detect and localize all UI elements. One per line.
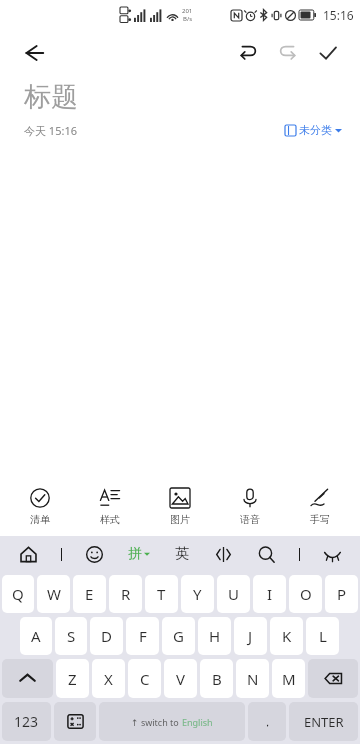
button[interactable]: M bbox=[272, 659, 305, 698]
staticText: W bbox=[47, 584, 61, 604]
button[interactable]: Q bbox=[2, 575, 34, 613]
button[interactable]: 清单 bbox=[10, 484, 70, 530]
button[interactable]: 123 bbox=[2, 702, 51, 741]
button[interactable]: J bbox=[234, 617, 267, 655]
button[interactable]: T bbox=[145, 575, 178, 613]
staticText: D bbox=[101, 626, 112, 646]
button[interactable]: Z bbox=[56, 659, 89, 698]
button[interactable]: K bbox=[270, 617, 303, 655]
button[interactable]: Hide keyboard bbox=[317, 539, 347, 569]
staticText: U bbox=[228, 584, 239, 604]
button[interactable]: W bbox=[37, 575, 70, 613]
staticText: O bbox=[300, 584, 312, 604]
button[interactable]: C bbox=[128, 659, 161, 698]
button[interactable]: 样式 bbox=[80, 484, 140, 530]
staticText: ↑ switch to bbox=[131, 716, 182, 728]
staticText: 拼 bbox=[128, 545, 142, 563]
staticText: C bbox=[140, 669, 150, 689]
button[interactable]: 英 bbox=[169, 545, 195, 563]
staticText: Q bbox=[12, 584, 24, 604]
button[interactable]: S bbox=[55, 617, 87, 655]
button[interactable]: 手写 bbox=[290, 484, 350, 530]
staticText: 15:16 bbox=[323, 7, 354, 23]
button[interactable]: Undo bbox=[228, 33, 268, 73]
button[interactable]: N bbox=[236, 659, 269, 698]
button[interactable]: Backspace bbox=[308, 659, 358, 698]
staticText: 语音 bbox=[240, 513, 260, 526]
staticText: 标题 bbox=[24, 80, 78, 114]
button[interactable]: E bbox=[73, 575, 106, 613]
staticText: 手写 bbox=[310, 513, 330, 526]
staticText: R bbox=[121, 584, 131, 604]
button[interactable]: 语音 bbox=[220, 484, 280, 530]
staticText: Z bbox=[68, 669, 77, 689]
button[interactable]: ENTER bbox=[289, 702, 358, 741]
button[interactable]: D bbox=[90, 617, 123, 655]
button[interactable]: Layout bbox=[208, 539, 238, 569]
button[interactable]: O bbox=[289, 575, 322, 613]
staticText: X bbox=[104, 669, 113, 689]
staticText: 清单 bbox=[30, 513, 50, 526]
button[interactable]: U bbox=[217, 575, 250, 613]
button[interactable]: G bbox=[162, 617, 195, 655]
staticText: I bbox=[267, 584, 273, 604]
staticText: 英 bbox=[175, 545, 189, 563]
staticText: P bbox=[337, 584, 347, 604]
button[interactable]: ， bbox=[248, 702, 286, 741]
staticText: G bbox=[173, 626, 184, 646]
button[interactable]: B bbox=[200, 659, 233, 698]
button[interactable]: I bbox=[253, 575, 286, 613]
button[interactable]: Back bbox=[12, 31, 56, 75]
button[interactable]: A bbox=[20, 617, 52, 655]
staticText: M bbox=[282, 669, 296, 689]
staticText: 123 bbox=[14, 712, 39, 731]
button[interactable]: X bbox=[92, 659, 125, 698]
button[interactable]: H bbox=[198, 617, 231, 655]
staticText: 未分类 bbox=[299, 123, 332, 137]
button[interactable]: Search bbox=[251, 539, 281, 569]
button[interactable]: Redo bbox=[268, 33, 308, 73]
staticText: 图片 bbox=[170, 513, 190, 526]
staticText: S bbox=[67, 626, 76, 646]
button[interactable]: Emoji bbox=[79, 539, 109, 569]
staticText: ， bbox=[262, 715, 273, 729]
staticText: 201 bbox=[182, 7, 193, 15]
button[interactable]: R bbox=[109, 575, 142, 613]
staticText: 今天 15:16 bbox=[24, 123, 77, 138]
staticText: J bbox=[248, 626, 253, 646]
staticText: English bbox=[182, 716, 213, 728]
button[interactable]: P bbox=[325, 575, 358, 613]
staticText: H bbox=[209, 626, 221, 646]
button[interactable]: Y bbox=[181, 575, 214, 613]
staticText: V bbox=[176, 669, 186, 689]
staticText: A bbox=[31, 626, 41, 646]
button[interactable]: Shift bbox=[2, 659, 53, 698]
button[interactable]: 图片 bbox=[150, 484, 210, 530]
staticText: L bbox=[319, 626, 327, 646]
staticText: T bbox=[157, 584, 166, 604]
staticText: B bbox=[212, 669, 222, 689]
staticText: K bbox=[282, 626, 292, 646]
staticText: Y bbox=[193, 584, 202, 604]
button[interactable]: L bbox=[306, 617, 339, 655]
button[interactable]: Home bbox=[13, 539, 43, 569]
button[interactable]: ↑ switch to bbox=[99, 702, 245, 741]
staticText: ENTER bbox=[304, 713, 344, 731]
staticText: B/s bbox=[183, 15, 193, 23]
staticText: N bbox=[247, 669, 259, 689]
staticText: E bbox=[85, 584, 94, 604]
button[interactable]: Symbols bbox=[54, 702, 96, 741]
button[interactable]: F bbox=[126, 617, 159, 655]
staticText: 样式 bbox=[100, 513, 120, 526]
button[interactable]: V bbox=[164, 659, 197, 698]
button[interactable]: Done bbox=[308, 33, 348, 73]
button[interactable]: 拼 bbox=[122, 545, 156, 563]
staticText: F bbox=[139, 626, 147, 646]
button[interactable]: 未分类 bbox=[281, 120, 346, 140]
